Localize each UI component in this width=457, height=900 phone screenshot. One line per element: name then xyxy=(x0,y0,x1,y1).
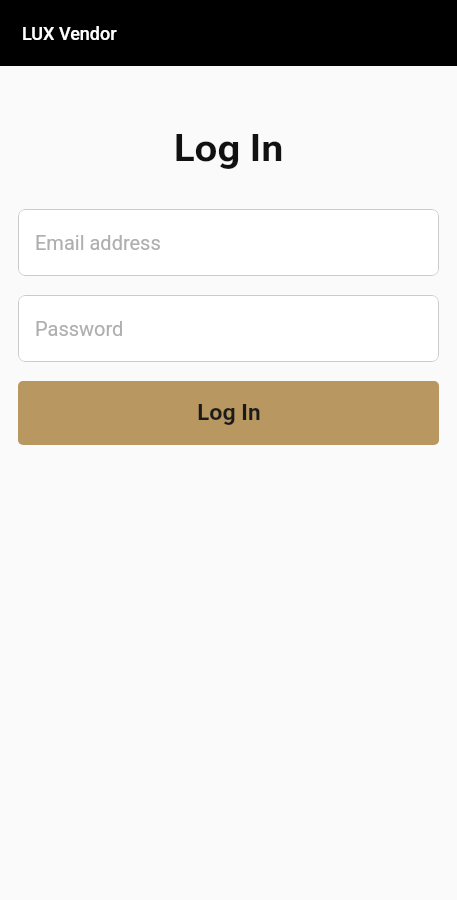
button[interactable]: Email address xyxy=(18,209,439,276)
staticText: Log In xyxy=(197,400,261,426)
staticText: LUX Vendor xyxy=(22,23,117,44)
button[interactable]: Password xyxy=(18,295,439,362)
button[interactable]: Log In xyxy=(18,381,439,445)
staticText: Password xyxy=(35,317,124,340)
staticText: Email address xyxy=(35,231,161,254)
staticText: Log In xyxy=(0,126,457,171)
